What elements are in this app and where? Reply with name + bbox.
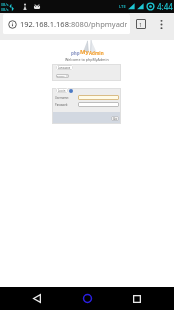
- staticText: Language: [58, 66, 71, 70]
- staticText: 0B/s: [1, 2, 9, 7]
- button[interactable]: English: [56, 74, 69, 78]
- staticText: English: [57, 75, 65, 78]
- staticText: Log in: [58, 89, 66, 93]
- staticText: Username:: [55, 96, 69, 100]
- button[interactable]: [78, 102, 119, 107]
- staticText: Go: [113, 117, 117, 121]
- button[interactable]: Back: [24, 287, 50, 310]
- staticText: 1: [139, 21, 143, 28]
- staticText: php: [71, 50, 80, 56]
- button[interactable]: Documentation: [69, 89, 73, 93]
- button[interactable]: 192.168.1.168: [3, 14, 130, 34]
- staticText: LTE: [119, 4, 126, 10]
- button[interactable]: Tabs: [133, 16, 149, 32]
- staticText: My: [80, 48, 89, 56]
- button[interactable]: Home: [74, 287, 100, 310]
- button[interactable]: [78, 95, 119, 100]
- button[interactable]: Recent apps: [124, 287, 150, 310]
- staticText: 192.168.1.168: [20, 19, 69, 29]
- staticText: Welcome to phpMyAdmin: [65, 57, 109, 62]
- button[interactable]: More options: [153, 16, 169, 32]
- button[interactable]: Go: [111, 116, 119, 121]
- staticText: :8080/phpmyadm: [69, 19, 127, 29]
- staticText: 4:44: [157, 1, 173, 12]
- staticText: Admin: [89, 50, 104, 56]
- staticText: 0B/s: [1, 7, 9, 12]
- staticText: Password:: [55, 103, 68, 107]
